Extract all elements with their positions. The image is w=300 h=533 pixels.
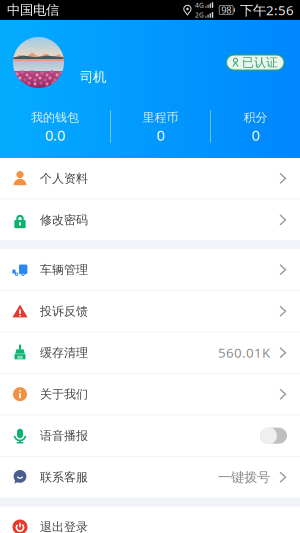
button[interactable]: 修改密码	[0, 199, 300, 240]
staticText: 修改密码	[40, 212, 88, 227]
staticText: 已认证	[242, 55, 278, 70]
staticText: 积分	[243, 110, 267, 125]
button[interactable]: 积分	[211, 111, 300, 141]
button[interactable]: 个人资料	[0, 158, 300, 199]
staticText: 下午2:56	[240, 1, 294, 19]
staticText: 关于我们	[40, 387, 88, 401]
button[interactable]: 里程币	[111, 111, 210, 141]
button[interactable]: 车辆管理	[0, 249, 300, 290]
staticText: 560.01K	[218, 344, 270, 361]
button[interactable]: 缓存清理	[0, 332, 300, 373]
staticText: 一键拨号	[218, 469, 270, 485]
staticText: 里程币	[142, 110, 178, 125]
staticText: 司机	[80, 69, 106, 85]
staticText: 4G	[195, 1, 204, 9]
staticText: 缓存清理	[40, 345, 88, 360]
staticText: 0	[156, 125, 164, 145]
staticText: 联系客服	[40, 470, 88, 484]
button[interactable]: 关于我们	[0, 374, 300, 415]
staticText: 0	[251, 125, 259, 145]
staticText: 个人资料	[40, 171, 88, 186]
staticText: 98	[221, 4, 231, 16]
staticText: 退出登录	[40, 520, 88, 533]
staticText: 我的钱包	[31, 110, 79, 125]
button[interactable]: 联系客服	[0, 457, 300, 498]
staticText: 0.0	[45, 125, 65, 145]
button[interactable]: 投诉反馈	[0, 291, 300, 332]
button[interactable]: 语音播报	[0, 415, 300, 456]
button[interactable]: 已认证	[226, 55, 284, 70]
button[interactable]: 我的钱包	[0, 111, 110, 141]
staticText: 语音播报	[40, 428, 88, 443]
button[interactable]: 退出登录	[0, 507, 300, 533]
staticText: 投诉反馈	[40, 304, 88, 318]
staticText: 中国电信	[7, 2, 59, 18]
staticText: 车辆管理	[40, 262, 88, 277]
staticText: 2G	[195, 10, 204, 19]
